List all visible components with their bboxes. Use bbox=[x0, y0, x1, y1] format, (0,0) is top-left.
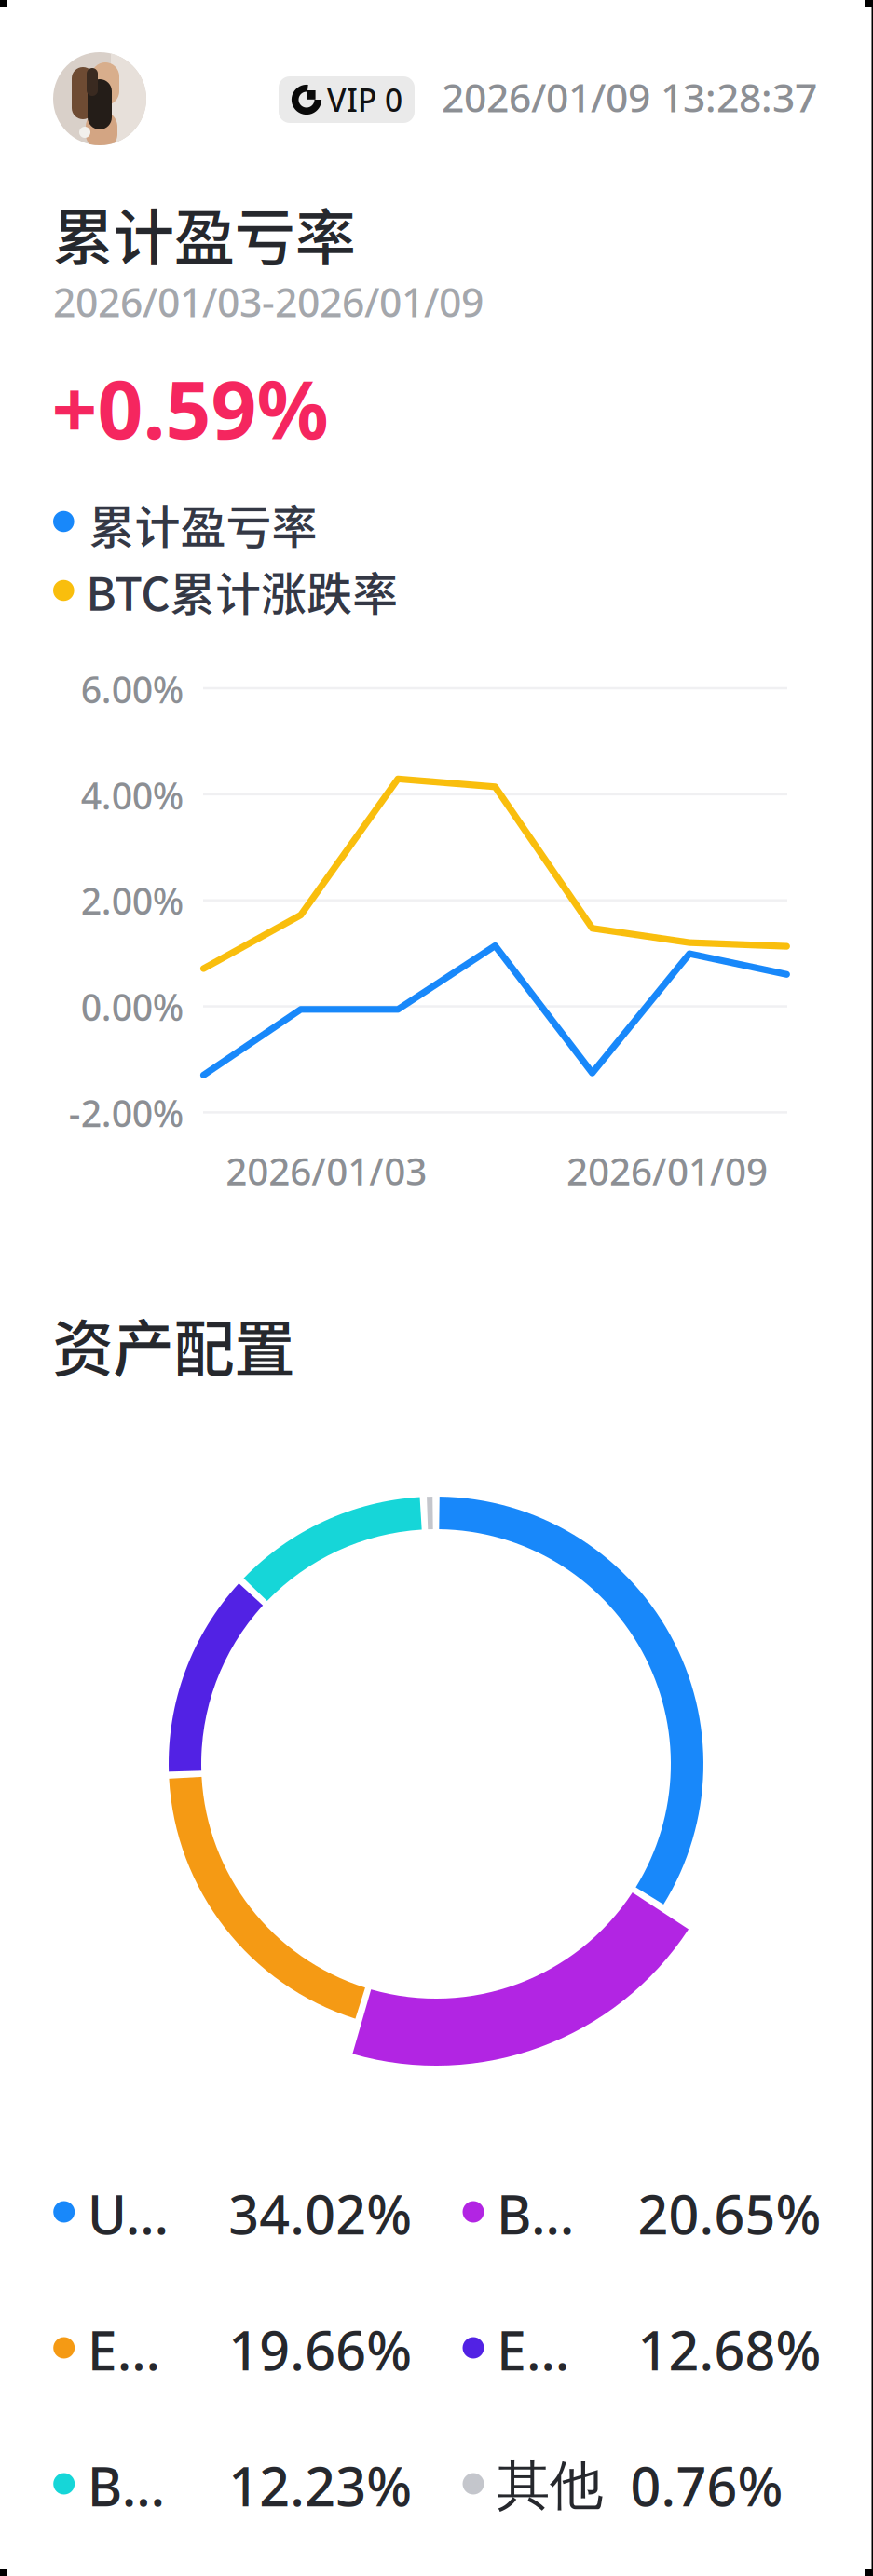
staticText: B… bbox=[497, 2177, 574, 2250]
staticText: 0.00% bbox=[81, 982, 183, 1032]
staticText: 20.65% bbox=[638, 2177, 821, 2250]
staticText: E… bbox=[497, 2313, 569, 2386]
staticText: 累计盈亏率 bbox=[89, 491, 317, 557]
button[interactable]: B… bbox=[42, 2428, 418, 2543]
staticText: 4.00% bbox=[81, 770, 183, 820]
staticText: E… bbox=[87, 2313, 160, 2386]
staticText: 12.23% bbox=[228, 2449, 412, 2522]
button[interactable]: VIP 0 bbox=[279, 76, 415, 123]
button[interactable]: 其他 bbox=[451, 2428, 827, 2543]
staticText: 19.66% bbox=[228, 2313, 412, 2386]
button[interactable]: B… bbox=[451, 2156, 827, 2271]
staticText: U… bbox=[87, 2177, 168, 2250]
staticText: 12.68% bbox=[638, 2313, 821, 2386]
staticText: 6.00% bbox=[81, 664, 183, 714]
staticText: VIP 0 bbox=[327, 78, 402, 121]
staticText: B… bbox=[87, 2449, 165, 2522]
staticText: 其他 bbox=[497, 2452, 603, 2519]
button[interactable]: U… bbox=[42, 2156, 418, 2271]
staticText: 34.02% bbox=[228, 2177, 412, 2250]
button[interactable]: E… bbox=[451, 2292, 827, 2407]
staticText: 2026/01/03 bbox=[226, 1145, 427, 1196]
staticText: 2.00% bbox=[81, 876, 183, 926]
staticText: 0.76% bbox=[630, 2449, 783, 2522]
staticText: 2026/01/09 13:28:37 bbox=[442, 70, 817, 124]
staticText: 累计盈亏率 bbox=[53, 189, 356, 277]
staticText: 2026/01/03-2026/01/09 bbox=[53, 275, 484, 329]
staticText: BTC累计涨跌率 bbox=[86, 558, 398, 624]
button[interactable]: Profile photo bbox=[53, 52, 146, 145]
button[interactable]: E… bbox=[42, 2292, 418, 2407]
staticText: -2.00% bbox=[69, 1088, 183, 1138]
staticText: 2026/01/09 bbox=[566, 1145, 768, 1196]
staticText: +0.59% bbox=[52, 354, 328, 462]
staticText: 资产配置 bbox=[52, 1300, 295, 1389]
